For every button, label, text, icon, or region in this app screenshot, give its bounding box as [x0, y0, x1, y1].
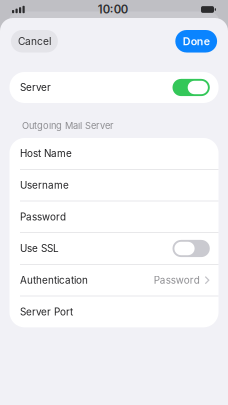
staticText: Cancel: [18, 35, 51, 47]
button[interactable]: Done: [175, 30, 217, 52]
staticText: 10:00: [98, 3, 128, 16]
staticText: Username: [20, 179, 69, 191]
staticText: Server: [20, 81, 51, 93]
staticText: Server Port: [20, 306, 73, 318]
staticText: Use SSL: [20, 242, 59, 254]
staticText: Password: [20, 211, 66, 223]
button[interactable]: Cancel: [11, 30, 58, 52]
staticText: Done: [183, 35, 210, 48]
staticText: Host Name: [20, 147, 72, 159]
staticText: Outgoing Mail Server: [22, 120, 113, 131]
staticText: Authentication: [20, 274, 88, 286]
staticText: Password: [154, 274, 200, 286]
